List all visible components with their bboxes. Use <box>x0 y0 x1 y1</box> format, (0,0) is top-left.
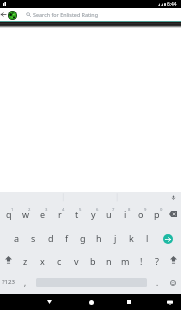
staticText: 1 <box>11 207 14 213</box>
staticText: 9 <box>144 207 147 213</box>
staticText: y <box>91 208 96 220</box>
button[interactable]: , <box>17 271 34 294</box>
staticText: 6:44 <box>167 1 177 8</box>
staticText: e <box>40 208 46 220</box>
button[interactable]: 6 <box>85 202 101 225</box>
button[interactable]: ?123 <box>0 271 17 294</box>
button[interactable]: d <box>42 225 59 248</box>
button[interactable]: n <box>101 248 117 271</box>
button[interactable]: b <box>85 248 101 271</box>
staticText: c <box>57 255 62 267</box>
button[interactable]: k <box>123 225 139 248</box>
button[interactable]: 2 <box>17 202 34 225</box>
button[interactable]: 3 <box>34 202 51 225</box>
button[interactable]: h <box>91 225 107 248</box>
staticText: f <box>65 232 69 244</box>
button[interactable]: x <box>34 248 51 271</box>
staticText: o <box>138 208 144 220</box>
button[interactable]: Recents <box>122 295 136 309</box>
button[interactable]: Home <box>84 295 98 309</box>
staticText: k <box>129 232 134 244</box>
button[interactable]: g <box>75 225 91 248</box>
button[interactable]: . <box>149 271 165 294</box>
button[interactable]: 0 <box>149 202 165 225</box>
staticText: q <box>6 208 12 220</box>
staticText: t <box>75 208 79 220</box>
button[interactable]: ! <box>133 248 149 271</box>
staticText: s <box>31 232 36 244</box>
button[interactable]: j <box>107 225 123 248</box>
staticText: w <box>22 208 30 220</box>
staticText: . <box>156 277 159 288</box>
button[interactable]: 7 <box>101 202 117 225</box>
button[interactable]: Space <box>34 271 149 294</box>
staticText: ! <box>140 255 143 267</box>
staticText: p <box>154 208 160 220</box>
button[interactable]: s <box>25 225 42 248</box>
staticText: h <box>96 232 102 244</box>
button[interactable]: 5 <box>68 202 85 225</box>
button[interactable]: 1 <box>0 202 17 225</box>
button[interactable]: Back <box>0 11 7 18</box>
staticText: z <box>23 255 28 267</box>
staticText: b <box>90 255 96 267</box>
button[interactable]: ? <box>149 248 165 271</box>
staticText: ?123 <box>2 278 15 286</box>
staticText: u <box>106 208 112 220</box>
staticText: 6 <box>96 207 99 213</box>
staticText: 5 <box>79 207 82 213</box>
button[interactable]: Shift <box>165 248 181 271</box>
staticText: 3 <box>45 207 48 213</box>
staticText: a <box>14 232 20 244</box>
staticText: m <box>121 255 130 267</box>
button[interactable]: Back <box>42 295 56 309</box>
button[interactable]: a <box>8 225 25 248</box>
staticText: 8 <box>128 207 131 213</box>
button[interactable]: c <box>51 248 68 271</box>
staticText: g <box>80 232 86 244</box>
staticText: 2 <box>28 207 31 213</box>
staticText: i <box>124 208 127 220</box>
button[interactable]: v <box>68 248 85 271</box>
staticText: r <box>58 208 62 220</box>
button[interactable]: 9 <box>133 202 149 225</box>
staticText: v <box>74 255 79 267</box>
button[interactable]: Emoji <box>165 271 181 294</box>
staticText: Search for Enlisted Rating <box>33 11 98 18</box>
button[interactable]: Backspace <box>165 202 181 225</box>
button[interactable]: f <box>59 225 75 248</box>
button[interactable]: m <box>117 248 133 271</box>
staticText: ? <box>155 255 159 267</box>
staticText: 4 <box>62 207 65 213</box>
staticText: d <box>48 232 54 244</box>
button[interactable]: l <box>139 225 155 248</box>
button[interactable]: 8 <box>117 202 133 225</box>
staticText: 7 <box>112 207 115 213</box>
staticText: 0 <box>160 207 163 213</box>
button[interactable]: Hide keyboard <box>163 295 177 309</box>
staticText: j <box>114 232 117 244</box>
staticText: , <box>24 277 27 288</box>
button[interactable]: Shift <box>0 248 17 271</box>
button[interactable]: Search <box>155 225 181 248</box>
staticText: n <box>106 255 112 267</box>
staticText: x <box>40 255 45 267</box>
staticText: l <box>146 232 149 244</box>
button[interactable]: 4 <box>51 202 68 225</box>
button[interactable]: z <box>17 248 34 271</box>
